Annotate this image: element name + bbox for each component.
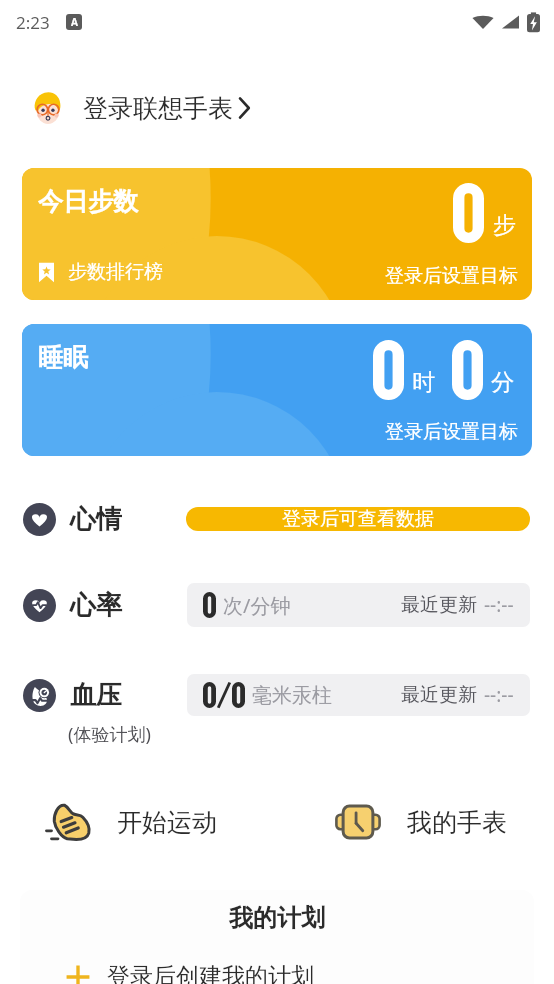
staticText: 我的计划: [229, 903, 325, 933]
button[interactable]: 血压: [23, 674, 530, 716]
staticText: 登录后创建我的计划: [107, 962, 314, 984]
staticText: (体验计划): [68, 722, 151, 747]
staticText: 毫米汞柱: [252, 683, 332, 708]
staticText: 心率: [70, 589, 122, 622]
button[interactable]: 登录后创建我的计划: [65, 962, 314, 984]
button[interactable]: 开始运动: [46, 796, 246, 848]
staticText: 心情: [70, 503, 122, 536]
staticText: 血压: [70, 679, 122, 712]
staticText: 2:23: [16, 11, 50, 34]
staticText: 开始运动: [117, 807, 217, 838]
staticText: 步: [493, 211, 516, 240]
staticText: 最近更新: [401, 683, 477, 707]
staticText: 今日步数: [38, 186, 138, 217]
button[interactable]: 今日步数: [22, 168, 532, 300]
button[interactable]: 毫米汞柱: [187, 674, 530, 716]
staticText: A: [71, 15, 78, 29]
staticText: 我的手表: [407, 807, 507, 838]
staticText: 登录联想手表: [83, 93, 233, 124]
staticText: --:--: [484, 682, 514, 708]
staticText: 登录后设置目标: [385, 420, 518, 444]
staticText: 登录后设置目标: [385, 264, 518, 288]
staticText: 步数排行榜: [68, 260, 163, 284]
staticText: --:--: [484, 592, 514, 618]
staticText: 睡眠: [38, 342, 88, 373]
staticText: 分: [491, 368, 514, 397]
button[interactable]: 次/分钟: [187, 583, 530, 627]
other: 心率: [23, 589, 56, 622]
staticText: 最近更新: [401, 593, 477, 617]
staticText: 登录后可查看数据: [282, 507, 434, 531]
other: 心情: [23, 503, 56, 536]
button[interactable]: 登录联想手表: [31, 87, 252, 129]
button[interactable]: 睡眠: [22, 324, 532, 456]
button[interactable]: 登录后可查看数据: [186, 507, 530, 531]
staticText: 时: [412, 368, 435, 397]
other: 血压: [23, 679, 56, 712]
button[interactable]: 心率: [23, 581, 530, 629]
staticText: 次/分钟: [223, 592, 291, 619]
button[interactable]: 心情: [23, 495, 530, 543]
button[interactable]: 我的手表: [334, 796, 534, 848]
